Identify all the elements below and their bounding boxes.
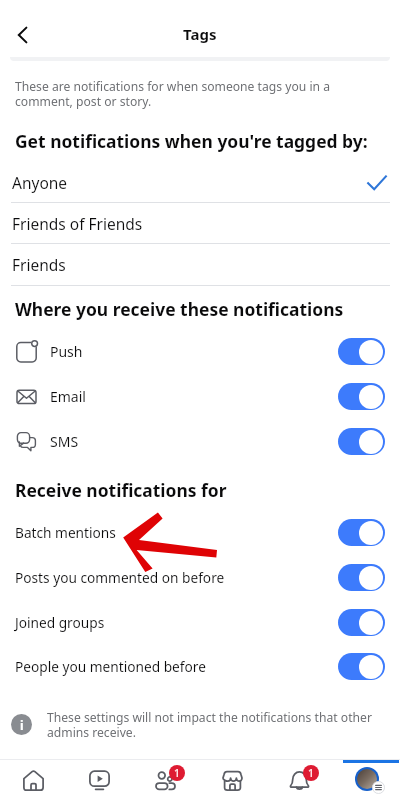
staticText: Receive notifications for	[15, 478, 227, 502]
staticText: Anyone	[12, 172, 68, 193]
staticText: i	[20, 717, 24, 733]
button[interactable]: Toggle	[338, 653, 385, 680]
button[interactable]: Home	[0, 759, 66, 800]
button[interactable]: Back	[0, 12, 45, 58]
button[interactable]: Toggle	[338, 519, 385, 546]
button[interactable]: SMS	[0, 419, 400, 463]
staticText: Get notifications when you're tagged by:	[15, 129, 368, 153]
staticText: 1	[308, 766, 315, 780]
staticText: Tags	[183, 24, 217, 44]
staticText: Friends	[12, 254, 66, 275]
button[interactable]: Friends of Friends	[0, 201, 400, 245]
button[interactable]: Anyone	[0, 160, 400, 204]
button[interactable]: Toggle	[338, 383, 385, 410]
button[interactable]: Batch mentions	[0, 510, 400, 554]
button[interactable]: Joined groups	[0, 600, 400, 644]
staticText: Friends of Friends	[12, 213, 143, 234]
button[interactable]: Toggle	[338, 428, 385, 455]
staticText: Push	[50, 342, 83, 361]
button[interactable]: People you mentioned before	[0, 644, 400, 688]
button[interactable]: Menu	[333, 759, 400, 800]
staticText: People you mentioned before	[15, 657, 206, 676]
staticText: Posts you commented on before	[15, 568, 225, 587]
staticText: These settings will not impact the notif…	[47, 709, 372, 740]
staticText: Joined groups	[15, 613, 105, 632]
button[interactable]: Push	[0, 329, 400, 373]
button[interactable]: Marketplace	[199, 759, 266, 800]
button[interactable]: Email	[0, 374, 400, 418]
button[interactable]: Toggle	[338, 564, 385, 591]
staticText: SMS	[50, 432, 79, 451]
button[interactable]: Notifications	[266, 759, 333, 800]
button[interactable]: Video	[66, 759, 132, 800]
staticText: Batch mentions	[15, 523, 116, 542]
button[interactable]: Posts you commented on before	[0, 555, 400, 599]
staticText: Where you receive these notifications	[15, 297, 344, 321]
staticText: These are notifications for when someone…	[15, 78, 331, 109]
staticText: Email	[50, 387, 86, 406]
staticText: 1	[174, 766, 181, 780]
button[interactable]: Friends	[132, 759, 199, 800]
button[interactable]: Toggle	[338, 338, 385, 365]
button[interactable]: Toggle	[338, 609, 385, 636]
button[interactable]: Friends	[0, 242, 400, 286]
